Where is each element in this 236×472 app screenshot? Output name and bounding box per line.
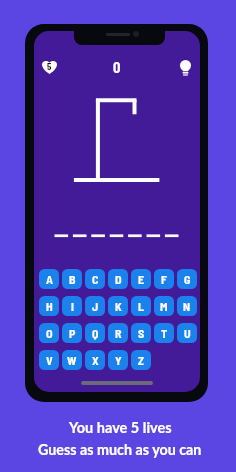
staticText: You have 5 lives — [69, 419, 172, 436]
button[interactable]: Hint — [177, 57, 193, 79]
staticText: C — [92, 272, 99, 286]
staticText: G — [184, 272, 191, 286]
staticText: N — [183, 299, 191, 313]
staticText: E — [138, 272, 145, 286]
staticText: D — [115, 272, 122, 286]
staticText: V — [46, 353, 53, 367]
staticText: T — [161, 326, 168, 340]
button[interactable]: G — [177, 269, 197, 289]
button[interactable]: J — [85, 296, 105, 316]
button[interactable]: Y — [108, 350, 128, 370]
button[interactable]: D — [108, 269, 128, 289]
staticText: L — [138, 299, 144, 313]
staticText: O — [46, 326, 53, 340]
button[interactable]: O — [39, 323, 59, 343]
button[interactable]: R — [108, 323, 128, 343]
button[interactable]: I — [62, 296, 82, 316]
button[interactable]: A — [39, 269, 59, 289]
staticText: F — [161, 272, 167, 286]
staticText: A — [46, 272, 53, 286]
button[interactable]: N — [177, 296, 197, 316]
button[interactable]: X — [85, 350, 105, 370]
button[interactable]: P — [62, 323, 82, 343]
staticText: Guess as much as you can — [38, 441, 202, 458]
staticText: U — [184, 326, 191, 340]
button[interactable]: M — [154, 296, 174, 316]
button[interactable]: T — [154, 323, 174, 343]
button[interactable]: C — [85, 269, 105, 289]
staticText: J — [92, 299, 99, 313]
button[interactable]: Lives remaining — [39, 56, 60, 77]
button[interactable]: V — [39, 350, 59, 370]
button[interactable]: B — [62, 269, 82, 289]
staticText: X — [92, 353, 99, 367]
staticText: 0 — [113, 58, 121, 75]
staticText: M — [160, 299, 168, 313]
staticText: K — [115, 299, 122, 313]
button[interactable]: W — [62, 350, 82, 370]
staticText: I — [71, 299, 74, 313]
staticText: S — [138, 326, 145, 340]
button[interactable]: L — [131, 296, 151, 316]
button[interactable]: K — [108, 296, 128, 316]
button[interactable]: Q — [85, 323, 105, 343]
staticText: W — [67, 353, 77, 367]
staticText: 5 — [47, 61, 52, 72]
button[interactable]: F — [154, 269, 174, 289]
button[interactable]: S — [131, 323, 151, 343]
staticText: R — [115, 326, 122, 340]
staticText: Q — [92, 326, 99, 340]
button[interactable]: E — [131, 269, 151, 289]
button[interactable]: Z — [131, 350, 151, 370]
staticText: Z — [138, 353, 144, 367]
button[interactable]: H — [39, 296, 59, 316]
staticText: P — [69, 326, 76, 340]
button[interactable]: U — [177, 323, 197, 343]
staticText: Y — [115, 353, 122, 367]
staticText: H — [46, 299, 53, 313]
staticText: B — [69, 272, 76, 286]
